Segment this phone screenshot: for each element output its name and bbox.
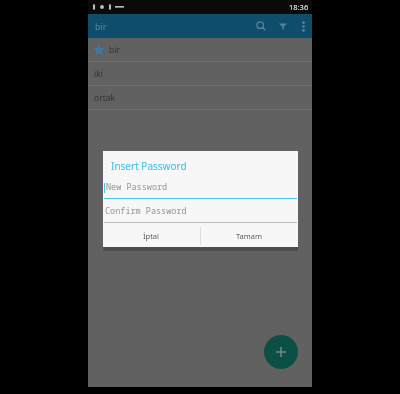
- staticText: Tamam: [236, 231, 263, 241]
- button[interactable]: ortak: [88, 86, 312, 109]
- button[interactable]: Add: [264, 335, 298, 369]
- staticText: bir: [109, 44, 120, 56]
- button[interactable]: Filter: [272, 15, 294, 37]
- button[interactable]: İptal: [103, 227, 200, 245]
- staticText: Confirm Password: [105, 205, 187, 217]
- staticText: New Password: [106, 181, 168, 193]
- staticText: 18:36: [289, 2, 309, 12]
- button[interactable]: bir: [88, 38, 312, 61]
- staticText: ortak: [94, 92, 116, 104]
- staticText: İptal: [143, 231, 160, 241]
- button[interactable]: Tamam: [201, 227, 298, 245]
- button[interactable]: More options: [294, 17, 312, 35]
- staticText: Insert Password: [111, 159, 187, 173]
- button[interactable]: Search: [250, 15, 272, 37]
- staticText: bir: [95, 20, 107, 32]
- staticText: iki: [94, 68, 103, 80]
